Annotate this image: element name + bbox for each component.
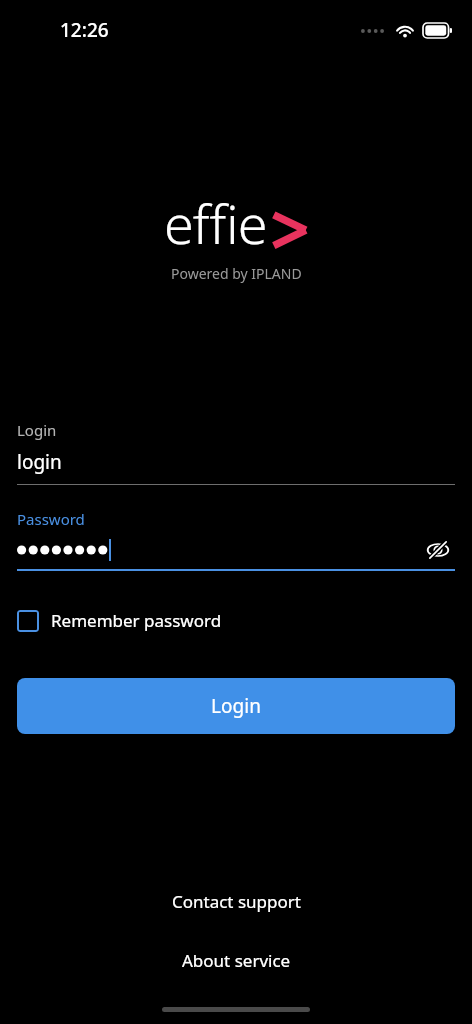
button[interactable]: Contact support bbox=[152, 884, 321, 919]
button[interactable]: Login bbox=[17, 678, 455, 734]
button[interactable]: About service bbox=[162, 943, 311, 978]
button[interactable]: Remember password bbox=[17, 605, 222, 636]
staticText: About service bbox=[182, 949, 291, 972]
staticText: Powered by IPLAND bbox=[171, 264, 302, 283]
staticText: Login bbox=[17, 420, 57, 440]
staticText: Login bbox=[211, 693, 261, 719]
button[interactable]: login bbox=[17, 449, 455, 475]
button[interactable]: Show password bbox=[421, 537, 455, 563]
staticText: 12:26 bbox=[60, 17, 109, 43]
staticText: login bbox=[17, 449, 62, 475]
staticText: Remember password bbox=[51, 609, 222, 632]
button[interactable] bbox=[17, 539, 421, 561]
staticText: Password bbox=[17, 509, 85, 529]
staticText: Contact support bbox=[172, 890, 301, 913]
staticText: effie bbox=[164, 186, 267, 260]
